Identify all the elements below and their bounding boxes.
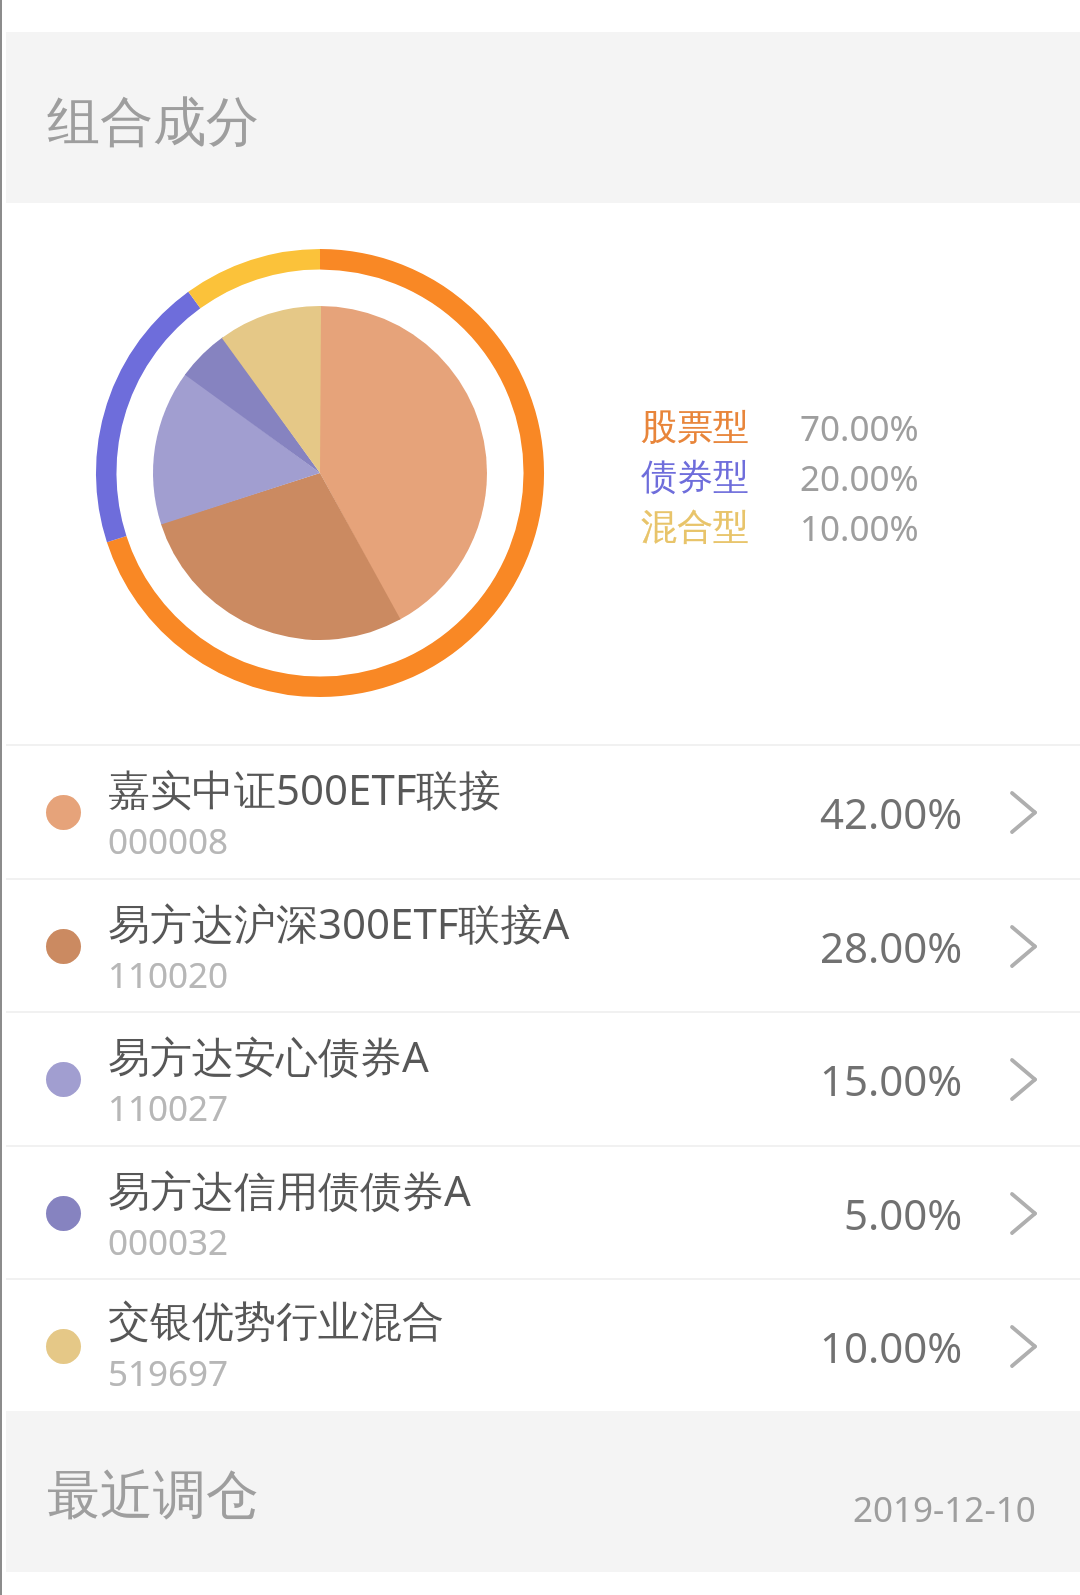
staticText: 519697 [108,1349,229,1397]
staticText: 混合型 [641,504,749,549]
staticText: 股票型 [641,404,749,449]
staticText: 70.00% [800,404,919,452]
staticText: 5.00% [844,1185,963,1242]
staticText: 42.00% [820,784,963,841]
staticText: 15.00% [820,1051,963,1108]
staticText: 110020 [108,951,229,999]
button[interactable]: 易方达安心债券A [0,1013,1080,1145]
button[interactable]: 组合成分 [0,32,1080,203]
button[interactable]: 交银优势行业混合 [0,1280,1080,1412]
button[interactable]: 最近调仓 [0,1411,1080,1572]
staticText: 20.00% [800,454,919,502]
other: Open details [1012,793,1035,832]
staticText: 2019-12-10 [853,1485,1036,1533]
staticText: 10.00% [800,504,919,552]
staticText: 10.00% [820,1318,963,1375]
button[interactable]: 嘉实中证500ETF联接 [0,746,1080,878]
staticText: 000008 [108,817,229,865]
staticText: 28.00% [820,918,963,975]
button[interactable]: 易方达信用债债券A [0,1147,1080,1279]
other: Open details [1012,1327,1035,1366]
other: Open details [1012,1194,1035,1233]
button[interactable]: 易方达沪深300ETF联接A [0,880,1080,1012]
staticText: 最近调仓 [47,1462,259,1529]
staticText: 易方达沪深300ETF联接A [108,894,570,951]
staticText: 110027 [108,1084,229,1132]
staticText: 交银优势行业混合 [108,1296,444,1349]
staticText: 嘉实中证500ETF联接 [108,760,501,817]
staticText: 组合成分 [47,89,259,156]
staticText: 易方达安心债券A [108,1027,429,1084]
staticText: 易方达信用债债券A [108,1161,471,1218]
other: Portfolio allocation chart [0,200,1080,744]
staticText: 债券型 [641,454,749,499]
staticText: 000032 [108,1218,229,1266]
other: Open details [1012,1060,1035,1099]
other: Open details [1012,927,1035,966]
